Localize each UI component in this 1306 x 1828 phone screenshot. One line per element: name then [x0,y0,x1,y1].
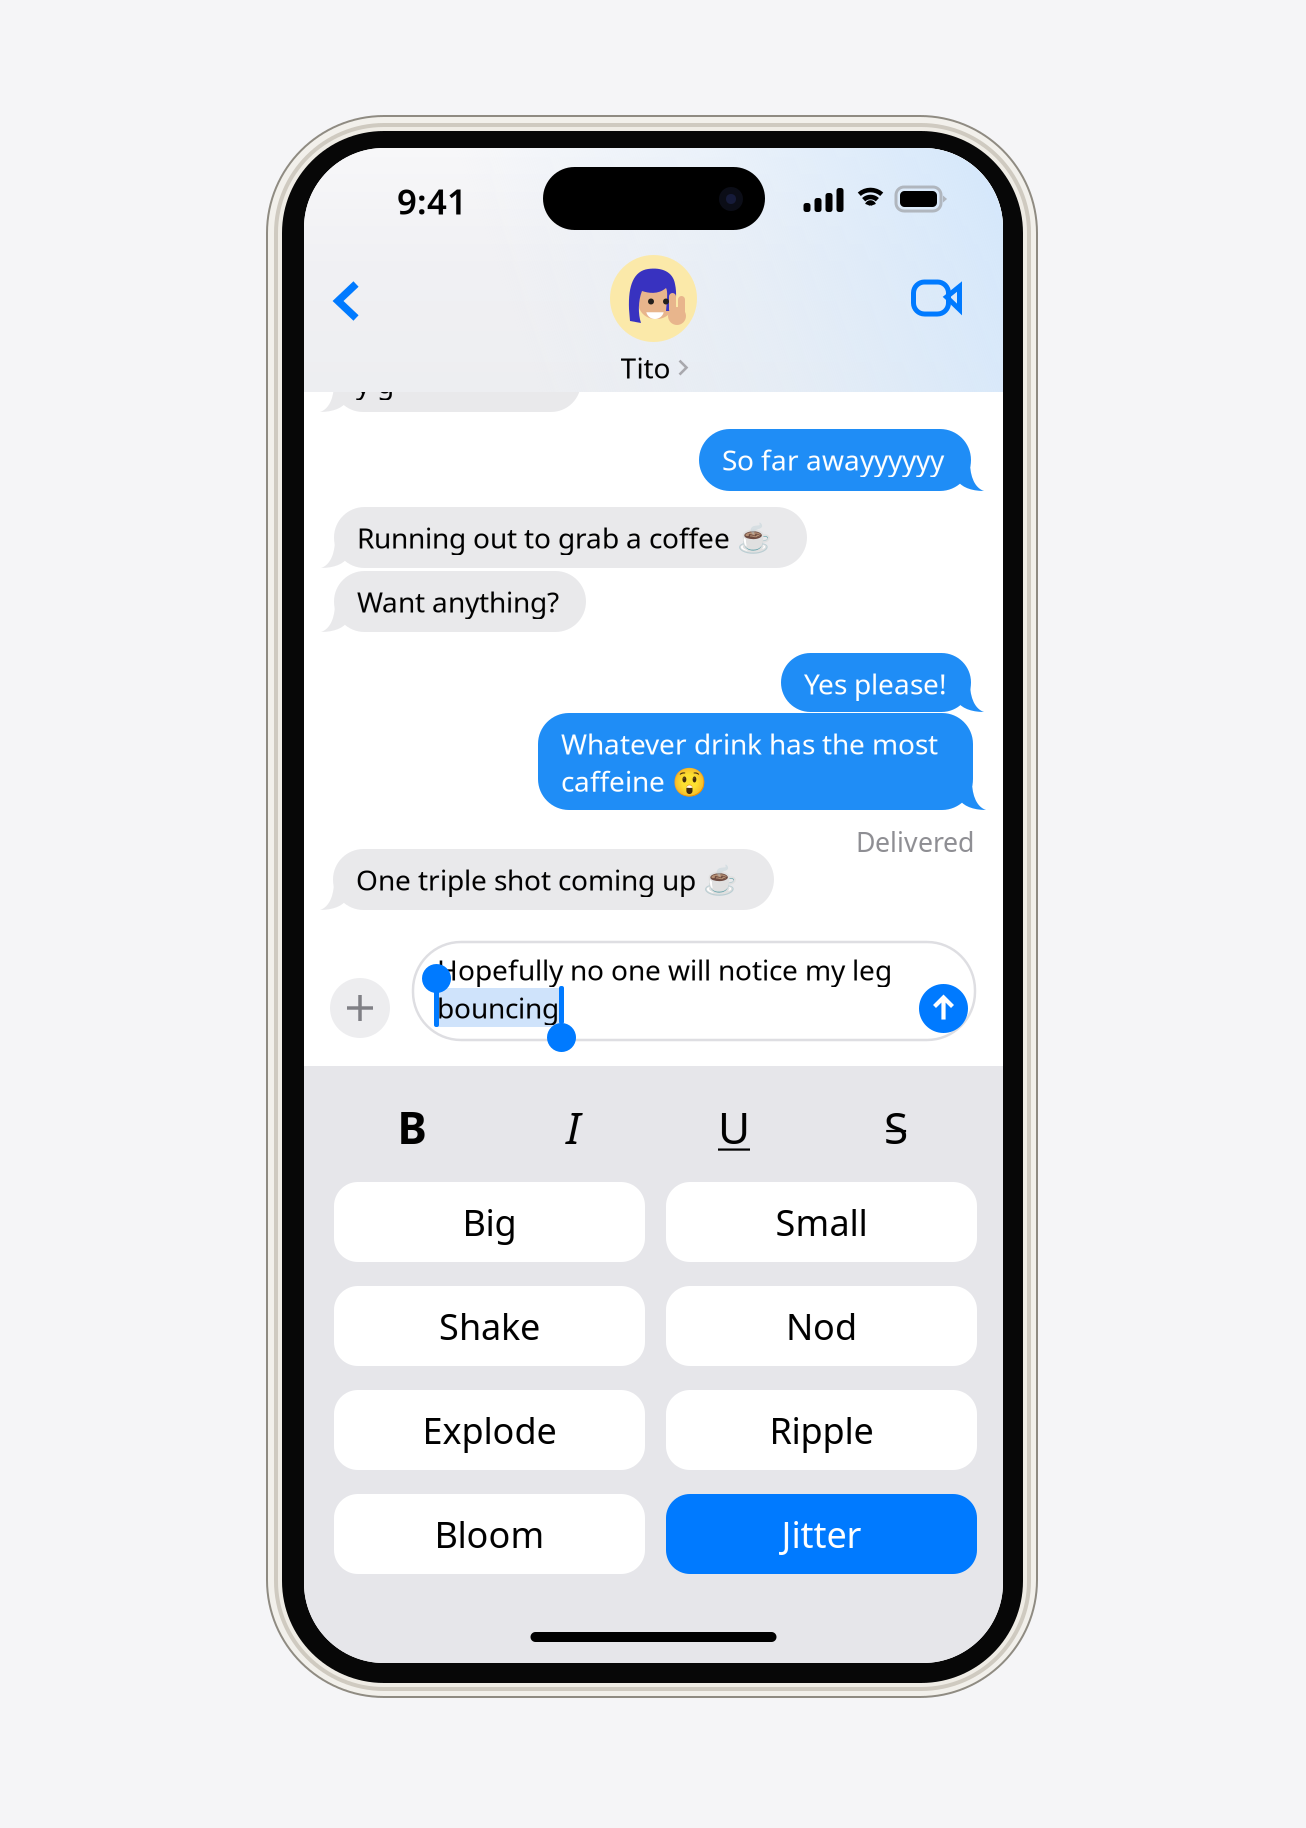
button[interactable]: Bloom [334,1494,645,1574]
button[interactable]: Back [304,260,390,342]
button[interactable]: FaceTime [895,259,979,337]
staticText: Running out to grab a coffee ☕ [357,519,772,556]
staticText: I [566,1098,580,1156]
button[interactable]: Bold [362,1094,462,1160]
staticText: Want anything? [357,583,559,620]
staticText: bouncing [437,989,559,1026]
staticText: Nod [786,1302,857,1350]
staticText: So far awayyyyyy [722,441,944,478]
staticText: Yes please! [804,665,947,702]
button[interactable]: Strikethrough [846,1094,946,1160]
staticText: Delivered [856,824,974,859]
button[interactable]: Italic [523,1094,623,1160]
staticText: Bloom [434,1510,544,1558]
staticText: Tito [620,349,670,386]
staticText: Jitter [781,1510,861,1558]
staticText: y g [356,364,394,401]
staticText: Big [462,1198,516,1246]
button[interactable]: Add attachment [330,978,390,1038]
staticText: S [884,1098,908,1156]
button[interactable]: Jitter [666,1494,977,1574]
staticText: Whatever drink has the most caffeine 😲 [561,725,938,799]
button[interactable]: Explode [334,1390,645,1470]
staticText: B [397,1098,426,1156]
staticText: 9:41 [397,178,467,224]
staticText: Small [775,1198,867,1246]
staticText: One triple shot coming up ☕ [356,861,738,898]
staticText: Explode [422,1406,556,1454]
staticText: U [718,1098,750,1156]
staticText: Ripple [769,1406,873,1454]
button[interactable]: Big [334,1182,645,1262]
button[interactable]: Tito [568,255,738,389]
button[interactable]: Shake [334,1286,645,1366]
button[interactable]: Ripple [666,1390,977,1470]
button[interactable]: Underline [684,1094,784,1160]
button[interactable]: Send [919,984,968,1033]
button[interactable]: Nod [666,1286,977,1366]
staticText: Shake [439,1302,540,1350]
staticText: Hopefully no one will notice my leg [437,951,892,988]
button[interactable]: Small [666,1182,977,1262]
